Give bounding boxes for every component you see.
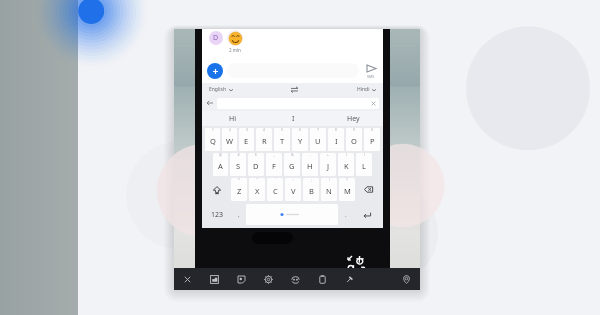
staticText: I <box>335 136 338 146</box>
staticText: I <box>292 114 295 124</box>
button[interactable]: Sticker <box>228 268 255 290</box>
button[interactable]: 4 <box>256 128 272 151</box>
button[interactable]: 0 <box>364 128 380 151</box>
staticText: 4 <box>263 128 265 132</box>
staticText: D <box>253 161 259 171</box>
button[interactable]: ? <box>339 178 355 201</box>
staticText: 2 <box>229 128 231 132</box>
staticText: T <box>280 136 285 146</box>
staticText: Q <box>210 136 216 146</box>
staticText: . <box>345 211 347 219</box>
staticText: O <box>351 136 357 146</box>
staticText: ! <box>329 178 330 182</box>
button[interactable]: 6 <box>292 128 308 151</box>
staticText: L <box>362 161 366 171</box>
staticText: : <box>293 178 294 182</box>
staticText: 9 <box>353 128 355 132</box>
button[interactable]: ; <box>303 178 319 201</box>
button[interactable]: ) <box>356 153 372 176</box>
staticText: 2 min <box>229 47 241 53</box>
button[interactable]: 123 <box>204 202 231 227</box>
button[interactable]: 2 <box>222 128 237 151</box>
staticText: U <box>315 136 321 146</box>
staticText: 0 <box>371 128 373 132</box>
button[interactable]: Swap languages <box>290 85 299 94</box>
button[interactable]: 7 <box>310 128 326 151</box>
staticText: H <box>307 161 313 171</box>
staticText: P <box>370 136 375 146</box>
button[interactable]: # <box>230 153 246 176</box>
staticText: # <box>237 153 240 157</box>
staticText: X <box>255 186 260 196</box>
button[interactable]: Hindi <box>356 86 377 93</box>
staticText: 123 <box>211 210 224 220</box>
button[interactable]: ! <box>321 178 337 201</box>
button[interactable]: Send SMS <box>359 63 383 79</box>
button[interactable]: " <box>249 178 265 201</box>
button[interactable]: Space <box>246 204 338 225</box>
button[interactable]: Mask <box>282 268 309 290</box>
button[interactable]: 3 <box>239 128 254 151</box>
button[interactable] <box>217 98 379 109</box>
button[interactable]: - <box>302 153 318 176</box>
staticText: Hey <box>347 114 360 124</box>
button[interactable]: $ <box>248 153 264 176</box>
staticText: - <box>309 153 311 157</box>
staticText: N <box>326 186 332 196</box>
button[interactable]: & <box>284 153 300 176</box>
button[interactable]: @ <box>213 153 228 176</box>
button[interactable]: Hey <box>323 111 383 126</box>
staticText: D <box>213 33 219 43</box>
staticText: C <box>273 186 278 196</box>
button[interactable]: Effects <box>255 268 282 290</box>
staticText: V <box>291 186 296 196</box>
staticText: Hindi <box>357 86 370 93</box>
button[interactable]: _ <box>266 153 282 176</box>
staticText: ( <box>346 153 347 157</box>
staticText: " <box>256 178 258 182</box>
staticText: E <box>244 136 249 146</box>
button[interactable]: Backspace <box>356 177 381 202</box>
button[interactable]: 1 <box>205 128 220 151</box>
button[interactable]: Close <box>174 268 201 290</box>
button[interactable]: + <box>320 153 336 176</box>
button[interactable]: Comma <box>231 202 246 227</box>
button[interactable]: Hi <box>202 111 263 126</box>
button[interactable]: Pin <box>336 268 363 290</box>
staticText: 5 <box>281 128 283 132</box>
button[interactable]: Back <box>206 99 214 107</box>
button[interactable]: 5 <box>274 128 290 151</box>
button[interactable]: Clipboard <box>309 268 336 290</box>
button[interactable]: 9 <box>346 128 362 151</box>
button[interactable]: Attach <box>207 63 223 79</box>
button[interactable]: Crop <box>201 268 228 290</box>
staticText: & <box>291 153 294 157</box>
staticText: + <box>327 153 329 157</box>
button[interactable]: ' <box>267 178 283 201</box>
button[interactable]: Shift <box>204 177 230 202</box>
staticText: ) <box>364 153 365 157</box>
staticText: ' <box>275 178 276 182</box>
staticText: W <box>226 136 233 146</box>
staticText: J <box>327 161 330 171</box>
button[interactable]: Enter <box>353 202 381 227</box>
button[interactable]: ( <box>338 153 354 176</box>
staticText: ? <box>346 178 348 182</box>
button[interactable]: Translate <box>346 254 366 274</box>
button[interactable]: * <box>231 178 247 201</box>
staticText: 3 <box>246 128 248 132</box>
staticText: 8 <box>335 128 337 132</box>
staticText: 1 <box>212 128 214 132</box>
button[interactable]: English <box>208 86 234 93</box>
button[interactable]: : <box>285 178 301 201</box>
button[interactable]: Location <box>393 268 420 290</box>
staticText: _ <box>273 153 275 157</box>
button[interactable]: 8 <box>328 128 344 151</box>
staticText: 7 <box>317 128 319 132</box>
button[interactable]: I <box>263 111 323 126</box>
staticText: , <box>238 211 240 219</box>
staticText: G <box>289 161 295 171</box>
staticText: Hi <box>229 114 236 124</box>
